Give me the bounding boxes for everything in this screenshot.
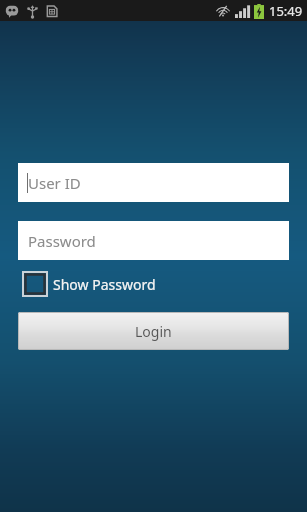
staticText: User ID [28, 173, 81, 193]
staticText: Login [135, 322, 172, 341]
other: Wi-Fi signal [216, 4, 230, 18]
other: USB connected [26, 5, 39, 18]
other: Hangouts notification [5, 4, 19, 18]
button[interactable]: Login [18, 312, 289, 350]
other: Mobile signal strength [235, 5, 250, 18]
other: Battery charging [254, 4, 264, 19]
staticText: Show Password [53, 275, 156, 294]
button[interactable]: Password [18, 221, 289, 260]
button[interactable]: Show Password [23, 272, 156, 296]
other: SIM card status [46, 5, 59, 18]
staticText: Password [28, 231, 96, 251]
button[interactable]: User ID [18, 163, 289, 202]
staticText: 15:49 [269, 2, 303, 20]
